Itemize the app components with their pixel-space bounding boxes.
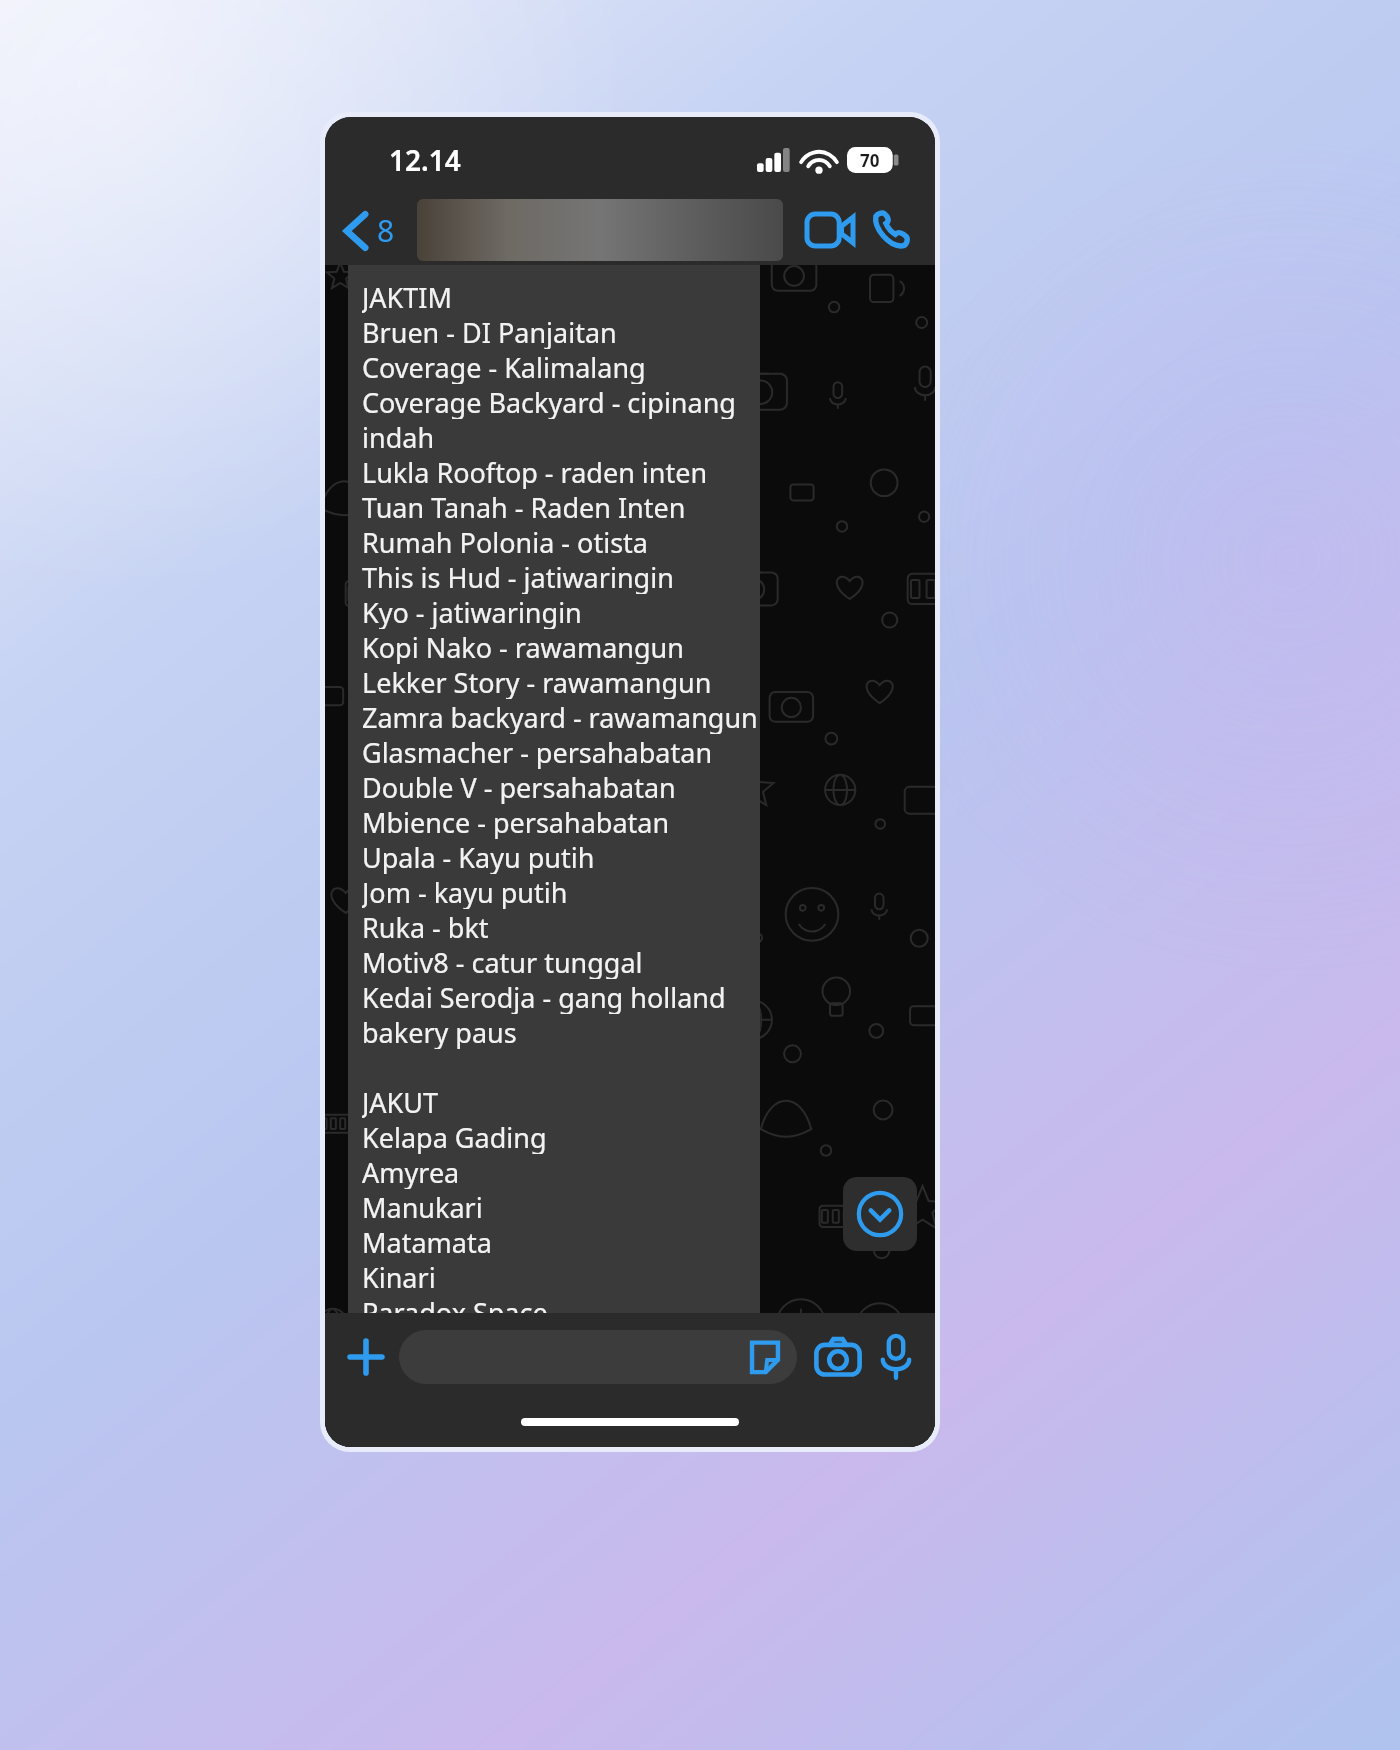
staticText: JAKTIM	[362, 279, 452, 314]
button[interactable]: Scroll to bottom	[843, 1177, 917, 1251]
staticText: Kinari	[362, 1259, 436, 1294]
staticText: Ruka - bkt	[362, 909, 489, 944]
button[interactable]: Add attachment	[325, 1324, 399, 1390]
staticText: This is Hud - jatiwaringin	[362, 559, 674, 594]
staticText: Double V - persahabatan	[362, 769, 676, 804]
staticText: Lekker Story - rawamangun	[362, 664, 712, 699]
staticText: Kedai Serodja - gang holland	[362, 979, 726, 1014]
staticText: Zamra backyard - rawamangun	[362, 699, 758, 734]
staticText: Jom - kayu putih	[362, 874, 568, 909]
staticText: 70	[860, 149, 880, 172]
button[interactable]: Voice call	[865, 202, 935, 258]
staticText: Motiv8 - catur tunggal	[362, 944, 643, 979]
button[interactable]: Back, 8 unread	[325, 202, 405, 259]
staticText: Lukla Rooftop - raden inten	[362, 454, 708, 489]
button[interactable]: Camera	[797, 1324, 871, 1390]
button[interactable]: Stickers	[747, 1339, 783, 1375]
staticText: Coverage - Kalimalang	[362, 349, 646, 384]
staticText: Glasmacher - persahabatan	[362, 734, 713, 769]
staticText: indah	[362, 419, 435, 454]
staticText: 8	[377, 210, 395, 251]
staticText: Rumah Polonia - otista	[362, 524, 648, 559]
staticText: Mbience - persahabatan	[362, 804, 670, 839]
staticText: Manukari	[362, 1189, 483, 1224]
staticText: Upala - Kayu putih	[362, 839, 595, 874]
button[interactable]: Stickers	[399, 1330, 797, 1384]
button[interactable]: Video call	[795, 204, 865, 256]
staticText: bakery paus	[362, 1014, 517, 1049]
staticText: Kyo - jatiwaringin	[362, 594, 582, 629]
button[interactable]: Voice message	[871, 1323, 935, 1391]
staticText: Matamata	[362, 1224, 492, 1259]
button[interactable]	[417, 199, 783, 261]
staticText: Tuan Tanah - Raden Inten	[362, 489, 686, 524]
button[interactable]: JAKTIM	[348, 265, 760, 1313]
staticText: Kopi Nako - rawamangun	[362, 629, 684, 664]
staticText: JAKUT	[362, 1084, 439, 1119]
staticText: Coverage Backyard - cipinang	[362, 384, 736, 419]
staticText: Paradox Space	[362, 1294, 548, 1313]
staticText: Amyrea	[362, 1154, 460, 1189]
staticText: Bruen - DI Panjaitan	[362, 314, 617, 349]
staticText: Kelapa Gading	[362, 1119, 547, 1154]
staticText: 12.14	[389, 141, 461, 179]
